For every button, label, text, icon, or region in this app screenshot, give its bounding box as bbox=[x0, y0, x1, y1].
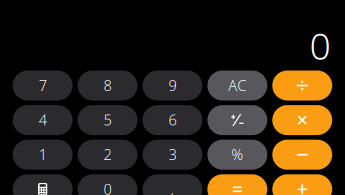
button[interactable]: 2 bbox=[78, 140, 137, 170]
button[interactable]: 4 bbox=[13, 105, 73, 135]
button[interactable]: 1 bbox=[13, 140, 73, 170]
button[interactable]: % bbox=[207, 140, 267, 170]
button[interactable]: 6 bbox=[142, 105, 202, 135]
staticText: 8 bbox=[104, 75, 112, 95]
button[interactable]: . bbox=[142, 174, 202, 195]
staticText: 2 bbox=[104, 145, 112, 164]
staticText: 7 bbox=[39, 75, 47, 95]
button[interactable]: Minus bbox=[272, 140, 332, 170]
button[interactable]: 0 bbox=[78, 174, 137, 195]
button[interactable]: Multiply bbox=[272, 105, 332, 135]
staticText: 9 bbox=[168, 75, 176, 95]
staticText: AC bbox=[228, 75, 246, 95]
button[interactable]: Calculator bbox=[13, 174, 73, 195]
button[interactable]: 8 bbox=[78, 70, 137, 100]
button[interactable]: Plus minus bbox=[207, 105, 267, 135]
staticText: 4 bbox=[39, 110, 47, 130]
staticText: % bbox=[231, 145, 243, 164]
staticText: 0 bbox=[310, 20, 331, 70]
button[interactable]: 7 bbox=[13, 70, 73, 100]
button[interactable]: 9 bbox=[142, 70, 202, 100]
button[interactable]: Divide bbox=[272, 70, 332, 100]
button[interactable]: AC bbox=[207, 70, 267, 100]
button[interactable]: Plus bbox=[272, 174, 332, 195]
button[interactable]: 5 bbox=[78, 105, 137, 135]
button[interactable]: Equals bbox=[207, 174, 267, 195]
staticText: 5 bbox=[104, 110, 112, 130]
staticText: . bbox=[170, 179, 174, 195]
staticText: 0 bbox=[104, 179, 112, 195]
staticText: 1 bbox=[39, 145, 47, 164]
staticText: 6 bbox=[168, 110, 176, 130]
button[interactable]: 3 bbox=[142, 140, 202, 170]
staticText: 3 bbox=[168, 145, 176, 164]
